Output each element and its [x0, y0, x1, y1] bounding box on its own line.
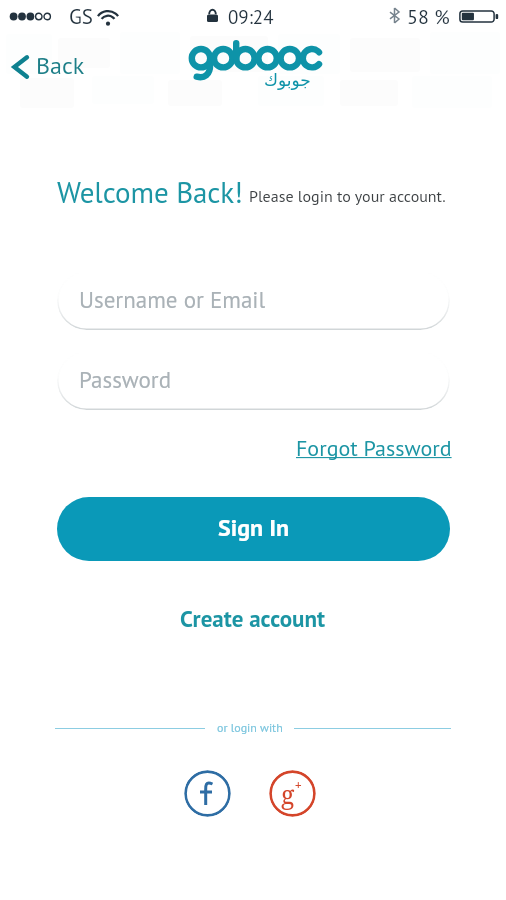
button[interactable]: Sign in with Google Plus — [269, 770, 316, 817]
button[interactable]: Password — [57, 351, 450, 410]
button[interactable]: Forgot Password — [296, 434, 452, 462]
button[interactable]: Sign in with Facebook — [184, 770, 231, 817]
button[interactable]: Sign In — [57, 497, 450, 561]
button[interactable]: Create account — [172, 598, 334, 640]
staticText: Please login to your account. — [249, 186, 446, 207]
staticText: g — [281, 777, 295, 811]
staticText: GS — [69, 3, 94, 30]
button[interactable]: Back — [6, 44, 93, 89]
staticText: Password — [79, 365, 172, 395]
staticText: or login with — [217, 720, 283, 736]
staticText: 58 % — [407, 4, 450, 30]
staticText: جوبوك — [264, 70, 311, 90]
button[interactable]: Username or Email — [57, 271, 450, 330]
staticText: Sign In — [218, 512, 290, 543]
staticText: + — [295, 777, 302, 794]
staticText: Back — [36, 50, 85, 81]
staticText: Welcome Back! — [57, 173, 243, 211]
staticText: Username or Email — [79, 285, 266, 315]
staticText: 09:24 — [228, 5, 274, 30]
